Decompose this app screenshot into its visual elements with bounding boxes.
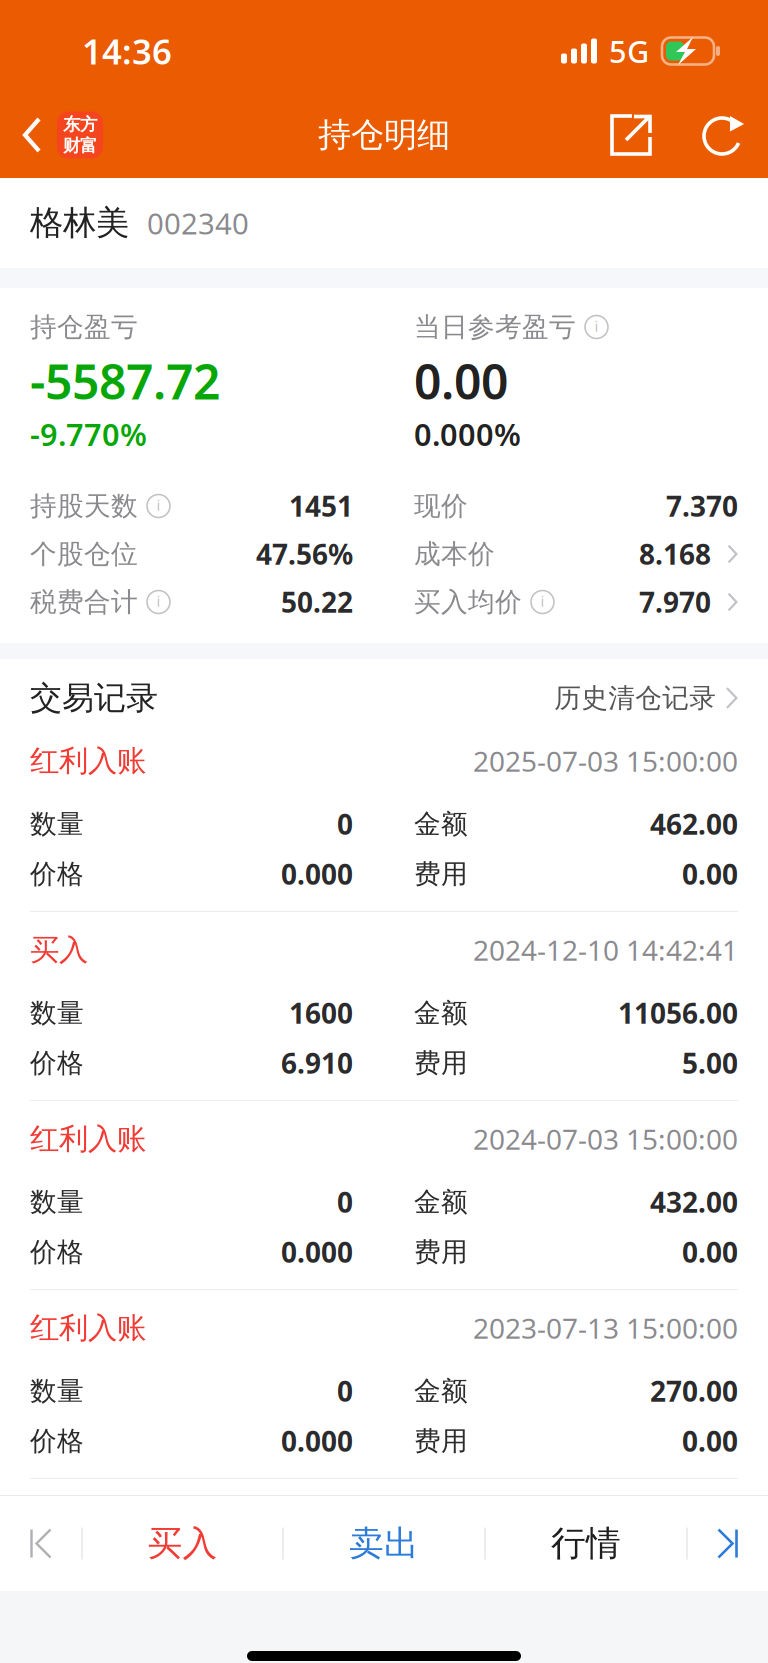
staticText: i	[594, 316, 598, 336]
staticText: 价格	[30, 1047, 84, 1079]
button[interactable]: 买入	[82, 1496, 282, 1591]
staticText: 金额	[414, 997, 468, 1029]
staticText: 费用	[414, 1047, 468, 1079]
staticText: 7.970	[639, 583, 711, 621]
button[interactable]: 卖出	[283, 1496, 484, 1591]
staticText: 红利入账	[30, 1310, 146, 1346]
staticText: 0.000%	[414, 414, 521, 454]
staticText: 8.168	[639, 535, 711, 573]
staticText: i	[540, 591, 544, 611]
staticText: 个股仓位	[30, 538, 138, 570]
staticText: 0.000	[281, 1422, 353, 1460]
button[interactable]: 行情	[485, 1496, 686, 1591]
staticText: 0.00	[682, 1422, 738, 1460]
staticText: 0.00	[414, 349, 508, 413]
staticText: 7.370	[666, 487, 738, 525]
staticText: 数量	[30, 1375, 84, 1407]
staticText: 0.000	[281, 1233, 353, 1271]
staticText: 0.00	[682, 1233, 738, 1271]
staticText: 持股天数	[30, 490, 138, 522]
staticText: 红利入账	[30, 1121, 146, 1157]
button[interactable]: 返回 东方财富	[0, 92, 103, 178]
staticText: 432.00	[650, 1183, 738, 1221]
staticText: 11056.00	[618, 994, 738, 1032]
staticText: 持仓盈亏	[30, 311, 138, 343]
staticText: 费用	[414, 1236, 468, 1268]
staticText: 0.00	[682, 855, 738, 893]
staticText: 价格	[30, 858, 84, 890]
staticText: 5G	[609, 31, 649, 71]
button[interactable]: 刷新	[694, 103, 754, 167]
staticText: 持仓明细	[318, 114, 450, 155]
staticText: 价格	[30, 1425, 84, 1457]
staticText: 270.00	[650, 1372, 738, 1410]
button[interactable]: 上一只	[0, 1496, 81, 1591]
staticText: -9.770%	[30, 414, 147, 454]
staticText: 历史清仓记录	[554, 682, 716, 714]
staticText: 买入均价	[414, 586, 522, 618]
staticText: i	[156, 495, 160, 515]
staticText: 2023-07-13 15:00:00	[473, 1309, 738, 1347]
staticText: 002340	[147, 203, 249, 242]
staticText: 买入	[147, 1522, 217, 1565]
staticText: 0	[337, 1372, 353, 1410]
staticText: 价格	[30, 1236, 84, 1268]
button[interactable]: 分享	[568, 103, 694, 167]
staticText: 0	[337, 1183, 353, 1221]
staticText: 50.22	[281, 583, 353, 621]
staticText: 数量	[30, 997, 84, 1029]
staticText: 2024-07-03 15:00:00	[473, 1120, 738, 1158]
staticText: i	[156, 591, 160, 611]
staticText: 财富	[63, 135, 97, 156]
staticText: 卖出	[349, 1522, 419, 1565]
staticText: 47.56%	[256, 535, 353, 573]
staticText: 14:36	[82, 28, 172, 74]
staticText: 金额	[414, 1186, 468, 1218]
staticText: 成本价	[414, 538, 495, 570]
staticText: 1600	[289, 994, 353, 1032]
staticText: 交易记录	[30, 678, 158, 718]
button[interactable]: 下一只	[687, 1496, 767, 1591]
staticText: 现价	[414, 490, 468, 522]
staticText: 6.910	[281, 1044, 353, 1082]
staticText: 1451	[289, 487, 353, 525]
staticText: 462.00	[650, 805, 738, 843]
staticText: 0.000	[281, 855, 353, 893]
staticText: 红利入账	[30, 743, 146, 779]
staticText: 东方	[63, 114, 97, 135]
staticText: 行情	[551, 1522, 621, 1565]
staticText: 金额	[414, 1375, 468, 1407]
staticText: 税费合计	[30, 586, 138, 618]
staticText: 格林美	[30, 202, 129, 243]
staticText: 金额	[414, 808, 468, 840]
staticText: 0	[337, 805, 353, 843]
staticText: 费用	[414, 1425, 468, 1457]
staticText: 数量	[30, 808, 84, 840]
staticText: 数量	[30, 1186, 84, 1218]
staticText: 5.00	[682, 1044, 738, 1082]
staticText: 2025-07-03 15:00:00	[473, 742, 738, 780]
staticText: 买入	[30, 932, 88, 968]
staticText: 费用	[414, 858, 468, 890]
staticText: 2024-12-10 14:42:41	[473, 931, 738, 969]
staticText: -5587.72	[30, 349, 220, 413]
button[interactable]: 历史清仓记录	[554, 682, 738, 714]
staticText: 当日参考盈亏	[414, 311, 576, 343]
